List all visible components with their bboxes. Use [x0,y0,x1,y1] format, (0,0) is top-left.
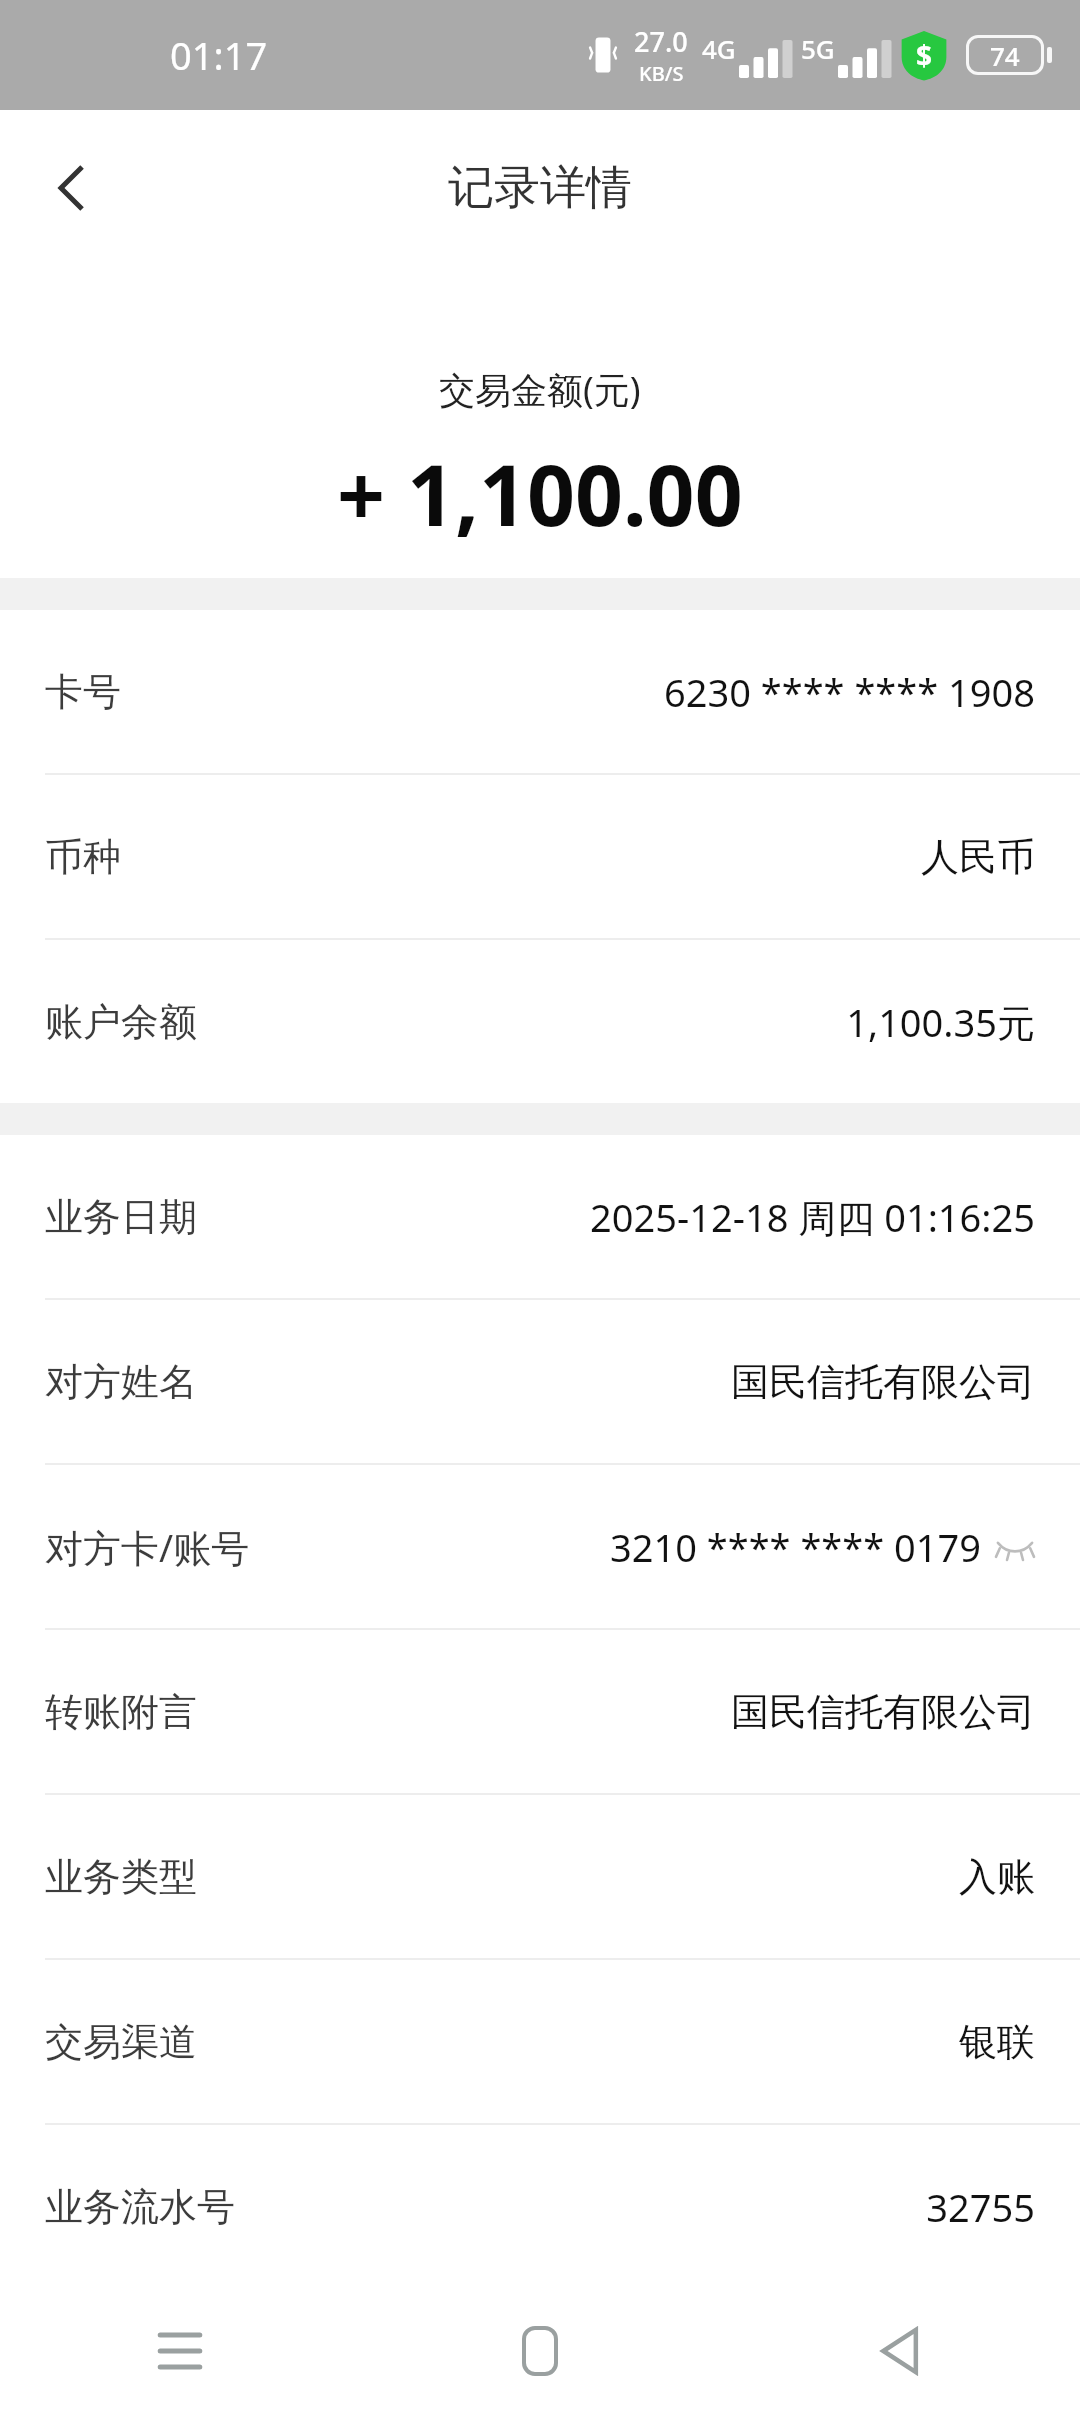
button[interactable]: Back [24,140,120,236]
button[interactable]: Back [720,2290,1080,2412]
button[interactable]: 交易渠道 [0,1960,1080,2125]
staticText: 5G [801,31,835,66]
staticText: 对方姓名 [45,1358,197,1406]
staticText: $ [916,36,933,74]
staticText: 01:17 [170,29,268,81]
staticText: 6230 **** **** 1908 [663,666,1035,718]
staticText: 交易渠道 [45,2018,197,2066]
staticText: 卡号 [45,668,121,716]
staticText: 32755 [926,2181,1035,2233]
button[interactable]: 业务类型 [0,1795,1080,1960]
button[interactable]: 账户余额 [0,940,1080,1103]
staticText: 业务日期 [45,1193,197,1241]
staticText: 2025-12-18 周四 01:16:25 [590,1191,1035,1243]
staticText: 对方卡/账号 [45,1521,250,1573]
staticText: 国民信托有限公司 [731,1358,1035,1406]
staticText: KB/S [639,60,684,87]
button[interactable]: 业务日期 [0,1135,1080,1300]
button[interactable]: 卡号 [0,610,1080,775]
staticText: 转账附言 [45,1688,197,1736]
other: Show number [995,1527,1035,1567]
staticText: 币种 [45,833,121,881]
staticText: 入账 [959,1853,1035,1901]
staticText: 记录详情 [448,159,632,217]
staticText: 4G [702,31,736,66]
staticText: 74 [990,38,1020,73]
staticText: 交易金额(元) [439,365,641,414]
staticText: 3210 **** **** 0179 [609,1521,981,1573]
staticText: 27.0 [634,23,688,60]
staticText: 银联 [959,2018,1035,2066]
staticText: 国民信托有限公司 [731,1688,1035,1736]
staticText: 1,100.35元 [846,996,1035,1048]
staticText: 业务类型 [45,1853,197,1901]
staticText: 业务流水号 [45,2183,235,2231]
button[interactable]: 币种 [0,775,1080,940]
button[interactable]: Recents [0,2290,360,2412]
staticText: 人民币 [921,833,1035,881]
staticText: 账户余额 [45,998,197,1046]
button[interactable]: 对方姓名 [0,1300,1080,1465]
button[interactable]: 对方卡/账号 [0,1465,1080,1630]
staticText: + 1,100.00 [337,436,743,550]
button[interactable]: 业务流水号 [0,2125,1080,2288]
button[interactable]: 转账附言 [0,1630,1080,1795]
button[interactable]: Home [360,2290,720,2412]
